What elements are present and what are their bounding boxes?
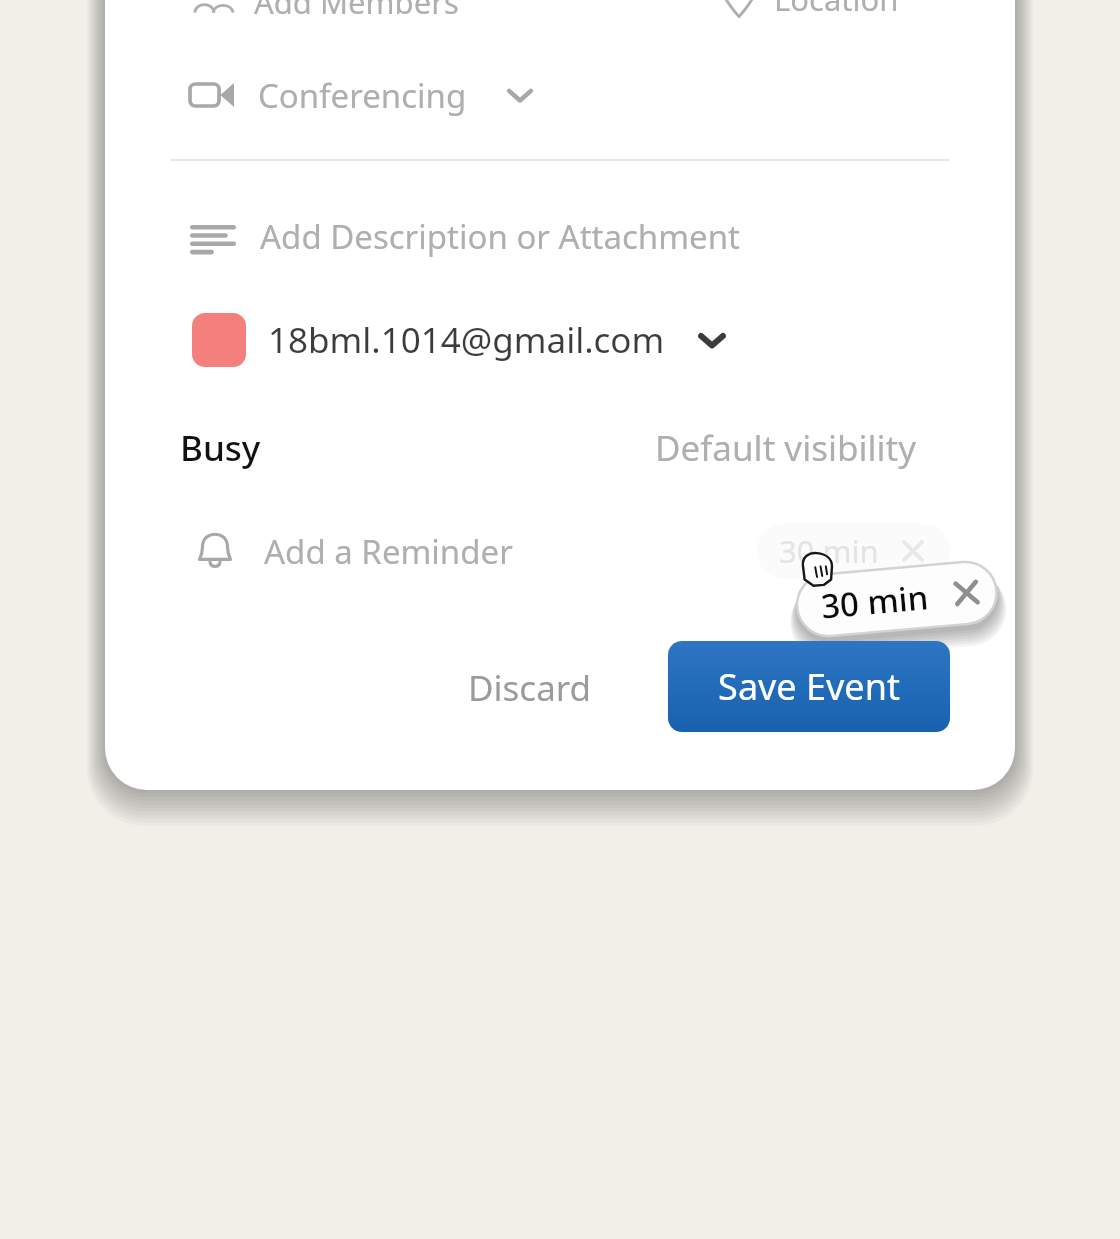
staticText: Add Members [254,0,459,23]
button[interactable]: Add Description or Attachment [180,206,741,266]
staticText: Discard [468,664,592,712]
staticText: 30 min [779,530,879,572]
button[interactable]: Default visibility [655,420,917,476]
button[interactable]: Add a Reminder [180,522,513,580]
button[interactable]: 18bml.1014@gmail.com [180,308,729,372]
staticText: Location [774,0,899,20]
staticText: Conferencing [258,73,467,118]
button[interactable]: 30 min [794,559,999,639]
staticText: Default visibility [655,424,917,472]
button[interactable]: Conferencing [180,66,537,124]
button[interactable]: Discard [440,650,620,726]
staticText: Add a Reminder [264,529,513,574]
staticText: Busy [180,424,261,472]
button[interactable]: Busy [180,420,261,476]
button[interactable]: Save Event [668,641,950,732]
staticText: Add Description or Attachment [260,214,741,259]
staticText: 18bml.1014@gmail.com [268,316,665,364]
staticText: 30 min [819,574,931,628]
staticText: Save Event [718,662,900,711]
